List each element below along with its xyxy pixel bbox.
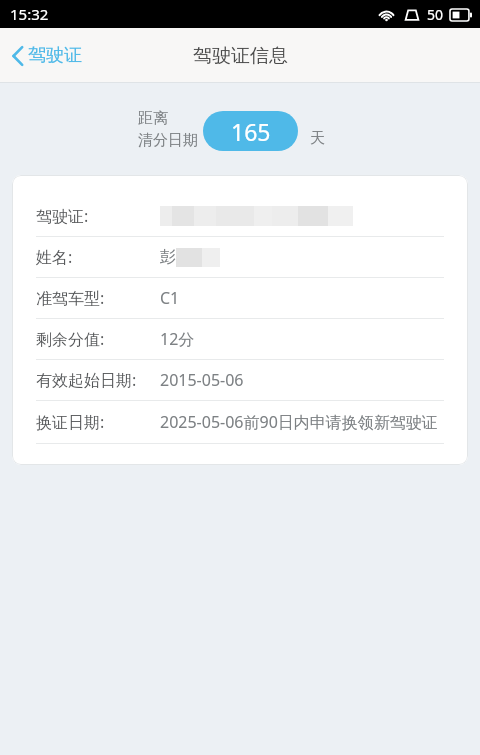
staticText: 天: [310, 129, 325, 148]
button[interactable]: 有效起始日期:: [12, 360, 468, 400]
staticText: 50: [427, 5, 444, 24]
staticText: 165: [231, 116, 271, 147]
staticText: 换证日期:: [36, 411, 105, 433]
button[interactable]: 剩余分值:: [12, 319, 468, 359]
staticText: 驾驶证: [28, 44, 82, 67]
staticText: 12分: [160, 328, 195, 350]
staticText: 15:32: [10, 4, 49, 24]
button[interactable]: 驾驶证: [0, 38, 94, 73]
staticText: 2025-05-06前90日内申请换领新驾驶证: [160, 411, 438, 433]
staticText: C1: [160, 287, 180, 309]
staticText: 姓名:: [36, 246, 73, 268]
staticText: 距离: [138, 109, 168, 128]
button[interactable]: 准驾车型:: [12, 278, 468, 318]
staticText: 清分日期: [138, 131, 198, 150]
button[interactable]: 驾驶证:: [12, 196, 468, 236]
button[interactable]: 姓名:: [12, 237, 468, 277]
staticText: 驾驶证信息: [193, 44, 288, 68]
staticText: 2015-05-06: [160, 369, 244, 391]
staticText: 驾驶证:: [36, 205, 89, 227]
button[interactable]: 换证日期:: [12, 401, 468, 443]
staticText: 准驾车型:: [36, 287, 105, 309]
staticText: 剩余分值:: [36, 328, 105, 350]
staticText: 有效起始日期:: [36, 369, 137, 391]
staticText: 彭: [160, 247, 176, 267]
